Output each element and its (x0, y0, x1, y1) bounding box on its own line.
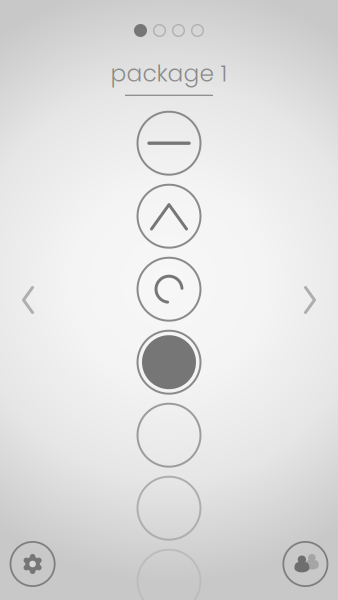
button[interactable]: Step 5 (136, 403, 201, 468)
button[interactable]: Step 6 (136, 476, 201, 541)
button[interactable]: Move up (136, 184, 201, 249)
button[interactable]: Step 7 (136, 549, 201, 600)
staticText: package 1 (110, 57, 227, 90)
button[interactable]: Repeat (136, 257, 201, 322)
button[interactable]: Next package (292, 277, 328, 323)
button[interactable]: Collapse (136, 111, 201, 176)
button[interactable]: Settings (10, 541, 56, 587)
button[interactable]: Friends (282, 541, 328, 587)
button[interactable]: Previous package (10, 277, 46, 323)
button[interactable]: Current step (136, 330, 201, 395)
